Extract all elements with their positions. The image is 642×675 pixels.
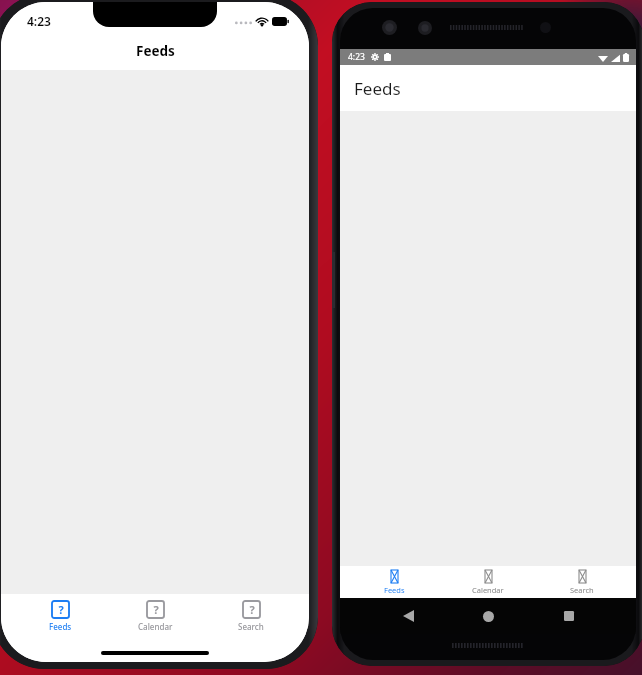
other: Feeds: [52, 601, 69, 618]
staticText: ?: [153, 602, 159, 617]
staticText: Feeds: [49, 621, 72, 632]
other: Feeds: [391, 570, 398, 583]
staticText: Search: [570, 585, 594, 595]
staticText: ?: [58, 602, 64, 617]
other: Calendar: [485, 570, 492, 583]
staticText: 4:23: [348, 51, 365, 63]
staticText: Feeds: [354, 77, 401, 100]
other: Search: [243, 601, 260, 618]
button[interactable]: Search: [214, 601, 288, 632]
staticText: Feeds: [384, 585, 405, 595]
other: Search: [579, 570, 586, 583]
button[interactable]: Recents: [556, 603, 582, 629]
other: Calendar: [147, 601, 164, 618]
staticText: ?: [249, 602, 255, 617]
button[interactable]: Search: [542, 570, 622, 595]
button[interactable]: Calendar: [448, 570, 528, 595]
staticText: 4:23: [27, 13, 51, 29]
staticText: Calendar: [138, 621, 173, 632]
button[interactable]: Calendar: [118, 601, 192, 632]
staticText: Search: [238, 621, 264, 632]
button[interactable]: Back: [395, 603, 421, 629]
staticText: Calendar: [472, 585, 504, 595]
button[interactable]: Feeds: [23, 601, 97, 632]
staticText: Feeds: [136, 42, 175, 60]
button[interactable]: Feeds: [354, 570, 434, 595]
button[interactable]: Home: [475, 603, 501, 629]
